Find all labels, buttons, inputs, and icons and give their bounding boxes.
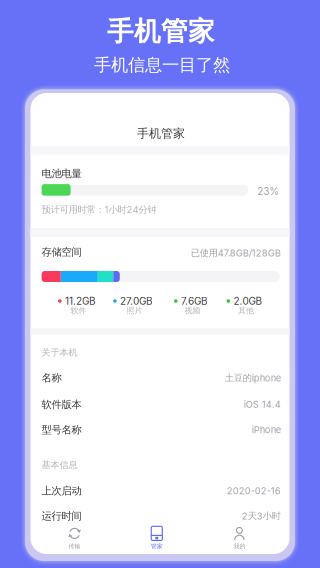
staticText: 电池电量 [41, 167, 81, 180]
staticText: 27.0GB [120, 295, 153, 307]
staticText: 11.2GB [65, 295, 96, 307]
button[interactable]: 传输 [0, 0, 320, 568]
staticText: 名称 [41, 371, 61, 384]
button[interactable]: 管家 [0, 0, 320, 568]
staticText: 土豆的iphone [225, 372, 281, 384]
staticText: 软件版本 [41, 398, 81, 411]
staticText: 2020-02-16 [227, 485, 281, 496]
staticText: 视频 [184, 306, 200, 316]
staticText: iPhone [252, 424, 281, 435]
staticText: 存储空间 [41, 246, 81, 259]
button[interactable]: 我的 [0, 0, 320, 568]
staticText: 其他 [238, 306, 254, 316]
staticText: 预计可用时常：1小时24分钟 [41, 204, 156, 215]
staticText: 运行时间 [41, 509, 81, 522]
staticText: 23% [257, 185, 279, 197]
staticText: 管家 [151, 542, 163, 550]
staticText: 2.0GB [233, 295, 262, 307]
staticText: 基本信息 [41, 459, 77, 471]
staticText: 关于本机 [41, 347, 77, 358]
staticText: 手机管家 [137, 126, 185, 141]
staticText: 已使用47.8GB/128GB [191, 247, 281, 259]
staticText: 手机管家 [107, 15, 215, 48]
staticText: 照片 [127, 306, 143, 316]
staticText: 传输 [69, 542, 81, 550]
staticText: 软件 [70, 306, 86, 316]
staticText: iOS 14.4 [244, 399, 281, 410]
staticText: 2天3小时 [242, 510, 281, 522]
staticText: 我的 [233, 542, 245, 550]
staticText: 7.6GB [181, 295, 208, 307]
staticText: 型号名称 [41, 423, 81, 436]
staticText: 上次启动 [41, 484, 81, 497]
staticText: 手机信息一目了然 [94, 54, 230, 76]
